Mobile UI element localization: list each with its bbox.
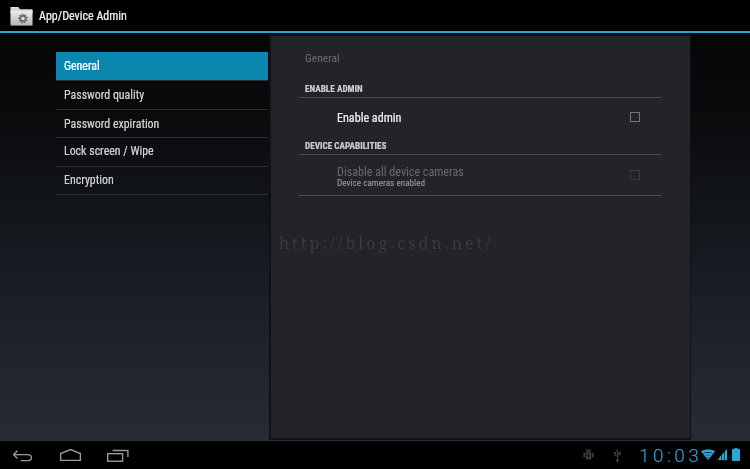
button[interactable]: Home bbox=[60, 449, 81, 461]
button[interactable]: Encryption bbox=[56, 166, 268, 194]
button[interactable]: Enable admin bbox=[271, 100, 689, 135]
button[interactable]: Recent apps bbox=[107, 449, 129, 462]
staticText: App/Device Admin bbox=[39, 9, 127, 23]
staticText: General bbox=[305, 51, 340, 64]
staticText: Device cameras enabled bbox=[337, 177, 426, 188]
staticText: General bbox=[64, 59, 100, 73]
staticText: Password quality bbox=[64, 88, 145, 102]
staticText: DEVICE CAPABILITIES bbox=[305, 140, 387, 151]
button[interactable]: App/Device Admin bbox=[10, 0, 150, 31]
staticText: Enable admin bbox=[337, 111, 402, 125]
staticText: Lock screen / Wipe bbox=[64, 144, 154, 158]
button[interactable]: Password quality bbox=[56, 80, 268, 109]
staticText: Encryption bbox=[64, 173, 114, 187]
staticText: ENABLE ADMIN bbox=[305, 83, 363, 94]
staticText: http://blog.csdn.net/ bbox=[279, 232, 494, 254]
button[interactable]: Disable all device cameras bbox=[271, 160, 689, 197]
button[interactable]: Password expiration bbox=[56, 109, 268, 138]
staticText: Disable all device cameras bbox=[337, 165, 464, 179]
staticText: Password expiration bbox=[64, 117, 160, 131]
button[interactable]: Back bbox=[13, 450, 33, 461]
button[interactable]: General bbox=[56, 52, 268, 80]
button[interactable]: Lock screen / Wipe bbox=[56, 137, 268, 165]
staticText: 10:03 bbox=[639, 444, 703, 466]
